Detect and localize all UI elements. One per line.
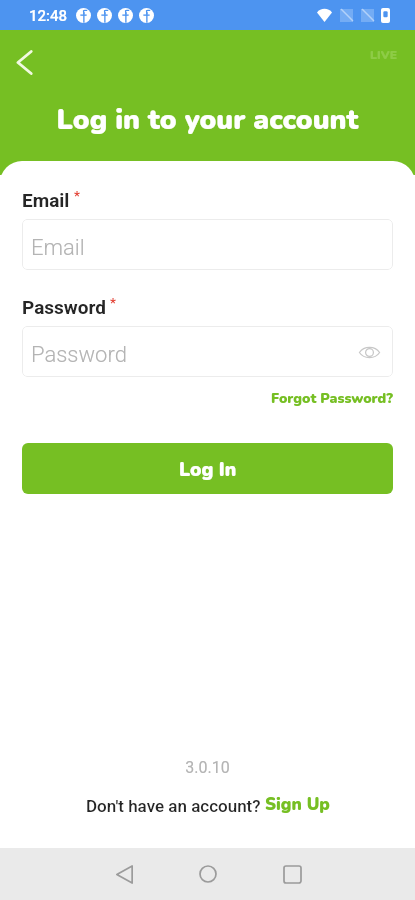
button[interactable]: Show password [356,339,382,365]
button[interactable]: Forgot Password? [271,389,393,408]
button[interactable]: Back [2,40,46,84]
staticText: Password [31,342,127,368]
button[interactable]: Log In [22,443,393,494]
button[interactable]: Sign Up [265,793,330,816]
staticText: Password [22,296,106,318]
button[interactable]: Recents [268,850,316,898]
staticText: Log In [179,457,237,483]
staticText: LIVE [370,47,398,63]
staticText: 12:48 [29,7,68,25]
button[interactable]: Home [184,850,232,898]
button[interactable]: Password [22,326,393,377]
staticText: Don't have an account? [86,796,265,816]
staticText: Email [22,189,70,211]
staticText: 3.0.10 [0,758,415,777]
button[interactable]: Email [22,219,393,270]
staticText: Email [31,235,85,261]
staticText: * [110,295,116,310]
staticText: * [74,188,80,203]
button[interactable]: Back [100,850,148,898]
staticText: Log in to your account [0,101,415,139]
